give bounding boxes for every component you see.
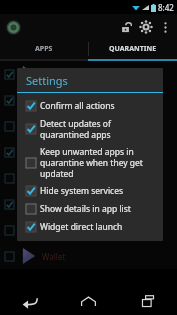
button[interactable]: Wallet [0,243,177,269]
button[interactable]: QUARANTINE [89,39,177,59]
staticText: Network Info [42,147,92,158]
button[interactable]: Music [0,87,177,113]
button[interactable]: APPS [0,39,88,59]
staticText: Widget direct launch [40,221,157,233]
staticText: Detect updates of quarantined apps [40,118,157,140]
button[interactable]: Widget direct launch [17,218,163,236]
staticText: Wallet [42,251,66,262]
button[interactable]: Network Info [0,139,177,165]
button[interactable]: My Backup [0,113,177,139]
button[interactable]: News & Weather [0,165,177,191]
staticText: Keep unwanted apps in quarantine when th… [40,146,157,179]
button[interactable]: Show details in app list [17,200,163,218]
button[interactable]: Home [59,287,118,315]
staticText: Hide system services [40,185,157,197]
staticText: NFC Task Launcher [42,199,114,210]
staticText: APPS [35,44,53,54]
button[interactable]: More options [156,18,174,36]
staticText: My Backup [42,121,84,132]
staticText: Mobile Data [42,69,88,80]
button[interactable]: Mobile Data [0,61,177,87]
button[interactable]: Hide system services [17,182,163,200]
button[interactable]: Detect updates of quarantined apps [17,115,163,143]
staticText: QUARANTINE [109,44,157,54]
button[interactable]: Confirm all actions [17,97,163,115]
button[interactable]: Back [0,287,59,315]
staticText: Settings [26,73,68,88]
button[interactable]: App icon [4,18,22,36]
staticText: Confirm all actions [40,100,157,112]
staticText: Show details in app list [40,203,157,215]
button[interactable]: Lock [116,17,136,37]
staticText: News & Weather [42,173,105,184]
staticText: 8:42 [158,2,174,13]
staticText: Sound Search for Google Play [42,225,154,236]
button[interactable]: Settings [136,17,156,37]
button[interactable]: Keep unwanted apps in quarantine when th… [17,143,163,182]
button[interactable]: Recent apps [118,287,177,315]
button[interactable]: NFC Task Launcher [0,191,177,217]
staticText: Music [42,95,64,106]
button[interactable]: Sound Search for Google Play [0,217,177,243]
